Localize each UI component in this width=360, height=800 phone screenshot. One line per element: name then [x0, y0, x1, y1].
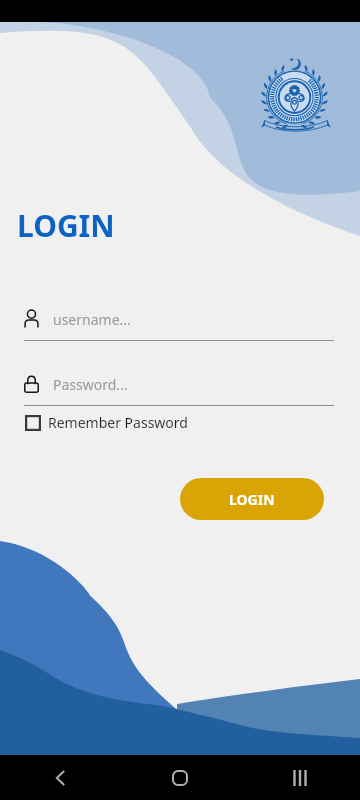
button[interactable]: Back — [0, 755, 120, 800]
staticText: Password... — [53, 375, 128, 394]
staticText: LOGIN — [229, 490, 275, 509]
button[interactable]: LOGIN — [180, 478, 324, 520]
button[interactable]: username... — [24, 302, 334, 336]
staticText: LOGIN — [17, 205, 115, 246]
button[interactable]: Home — [120, 755, 240, 800]
button[interactable]: Recent apps — [240, 755, 360, 800]
staticText: Remember Password — [48, 413, 188, 432]
button[interactable]: Remember Password — [23, 411, 190, 434]
staticText: username... — [53, 310, 131, 329]
button[interactable]: Password... — [24, 367, 334, 401]
